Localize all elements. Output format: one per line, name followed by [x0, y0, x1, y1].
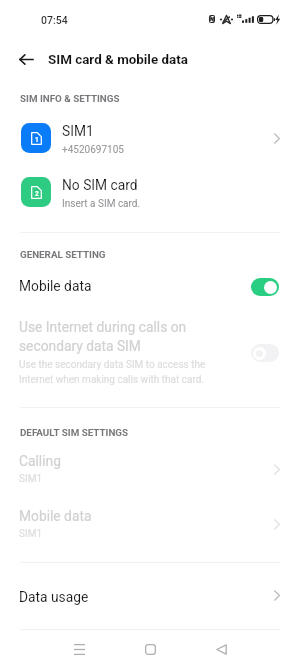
button[interactable]: Mobile data [0, 500, 300, 544]
button[interactable]: 1 [0, 113, 300, 161]
button[interactable]: Use Internet during calls on [0, 312, 300, 382]
button[interactable]: 2 [0, 167, 300, 215]
button[interactable]: Back [200, 634, 242, 664]
button[interactable]: Home [129, 634, 171, 664]
staticText: 1 [35, 136, 39, 144]
staticText: Use the secondary data SIM to access the [19, 359, 206, 371]
staticText: Mobile data [19, 278, 92, 294]
button[interactable]: Calling [0, 445, 300, 489]
staticText: Use Internet during calls on [19, 319, 187, 335]
staticText: GENERAL SETTING [20, 249, 106, 260]
button[interactable]: Data usage [0, 579, 300, 615]
staticText: No SIM card [62, 177, 138, 193]
staticText: SIM INFO & SETTINGS [20, 93, 120, 104]
staticText: Internet when making calls with that car… [19, 374, 205, 386]
staticText: SIM1 [19, 528, 43, 540]
staticText: DEFAULT SIM SETTINGS [20, 427, 129, 438]
staticText: SIM1 [62, 123, 94, 139]
staticText: SIM card & mobile data [48, 52, 188, 68]
staticText: 07:54 [41, 14, 68, 26]
staticText: Insert a SIM card. [62, 198, 141, 210]
staticText: 2 [35, 190, 39, 198]
staticText: +4520697105 [62, 144, 124, 156]
staticText: secondary data SIM [19, 338, 141, 354]
button[interactable]: Mobile data [0, 267, 300, 303]
button[interactable]: Back [10, 45, 42, 73]
staticText: Data usage [19, 589, 89, 605]
staticText: SIM1 [19, 473, 43, 485]
button[interactable]: Recents [58, 634, 100, 664]
staticText: Calling [19, 453, 61, 469]
staticText: Mobile data [19, 508, 92, 524]
